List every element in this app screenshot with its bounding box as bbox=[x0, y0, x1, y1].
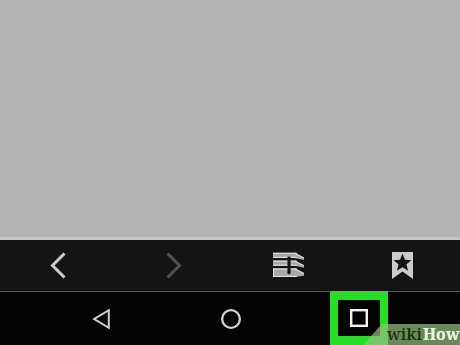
button[interactable]: Recents bbox=[330, 291, 388, 345]
button[interactable]: Home bbox=[207, 295, 255, 343]
staticText: wiki bbox=[387, 323, 423, 345]
button[interactable]: Back bbox=[77, 295, 125, 343]
staticText: How bbox=[423, 323, 460, 345]
button[interactable]: Bookmarks bbox=[378, 240, 426, 290]
button[interactable]: Tabs bbox=[264, 240, 312, 290]
button[interactable]: Back bbox=[34, 240, 82, 290]
button[interactable]: Forward bbox=[149, 240, 197, 290]
